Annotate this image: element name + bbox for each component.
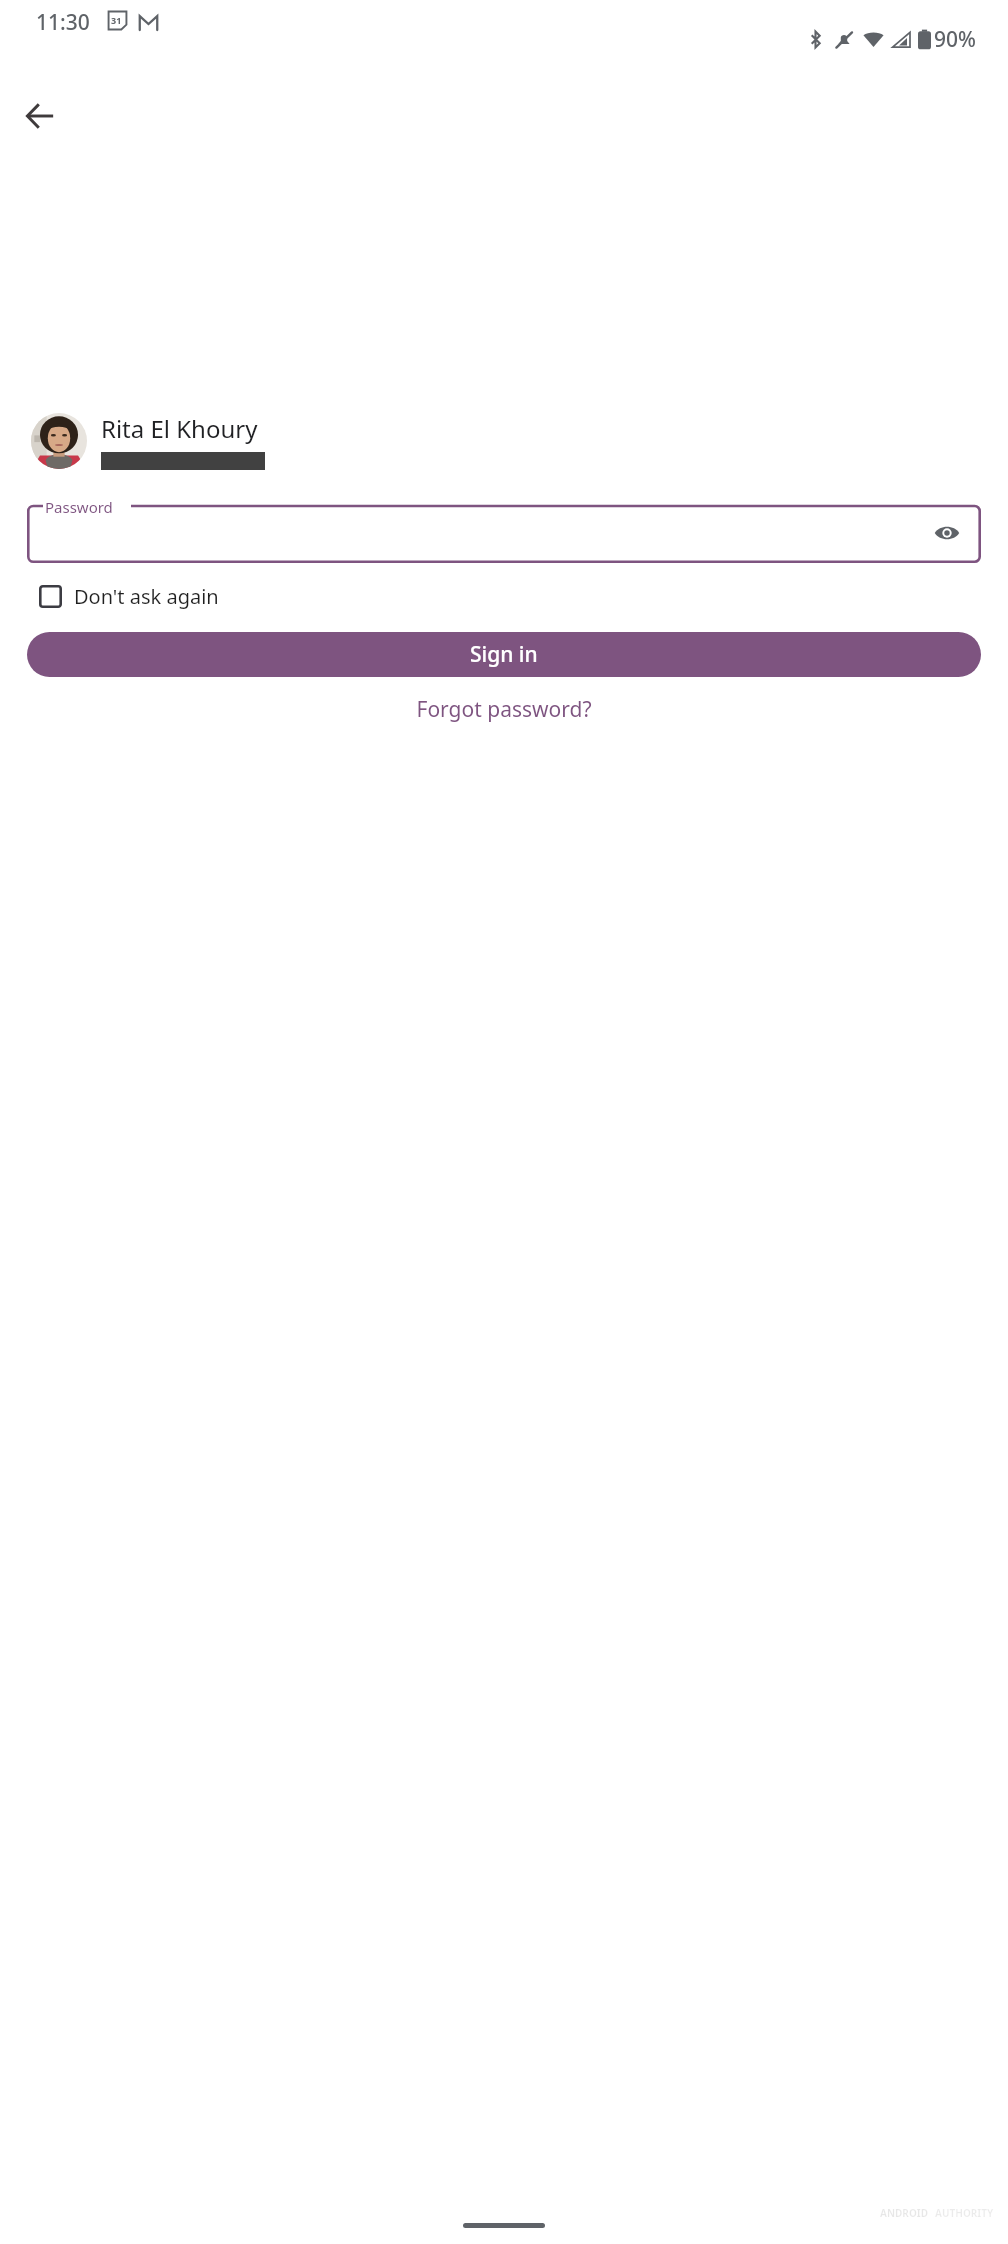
staticText: 90% [934,25,976,54]
button[interactable]: Sign in [27,632,981,677]
button[interactable]: Forgot password? [400,689,608,730]
button[interactable]: Show password [927,513,967,553]
staticText: Forgot password? [416,695,592,724]
staticText: Don't ask again [74,583,219,610]
staticText: ANDROID [880,2206,929,2220]
staticText: 11:30 [36,8,90,37]
staticText: 31 [111,14,122,26]
staticText: AUTHORITY [935,2206,994,2220]
button[interactable]: Don't ask again [27,573,219,619]
staticText: Sign in [470,640,538,669]
button[interactable]: Back [10,86,70,146]
button[interactable]: Password [27,497,981,563]
staticText: Password [45,497,113,517]
staticText: Rita El Khoury [101,412,258,445]
